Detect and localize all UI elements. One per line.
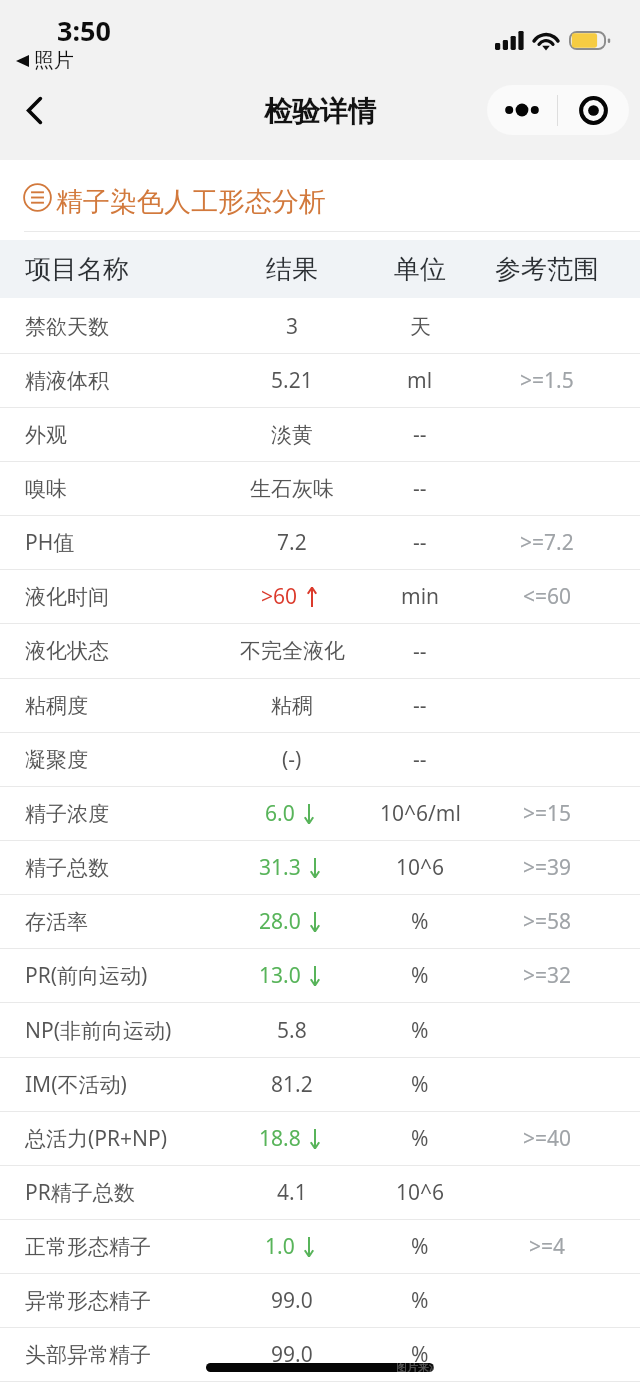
staticText: 10^6 — [396, 853, 445, 882]
button[interactable]: 液化状态 — [0, 624, 640, 679]
button[interactable]: 精子总数 — [0, 841, 640, 895]
staticText: -- — [413, 691, 427, 720]
staticText: 18.8 — [259, 1124, 301, 1153]
staticText: 淡黄 — [271, 422, 313, 448]
button[interactable]: Back — [3, 80, 65, 140]
staticText: >=4 — [529, 1232, 566, 1261]
staticText: 禁欲天数 — [25, 314, 109, 340]
button[interactable]: 精子染色人工形态分析 — [23, 162, 640, 242]
staticText: % — [411, 907, 429, 936]
staticText: >=1.5 — [520, 366, 574, 395]
staticText: 项目名称 — [25, 253, 129, 286]
staticText: % — [411, 961, 429, 990]
staticText: -- — [413, 474, 427, 503]
staticText: PR精子总数 — [25, 1178, 135, 1207]
staticText: 10^6/ml — [380, 799, 461, 828]
staticText: 粘稠度 — [25, 693, 88, 719]
staticText: min — [401, 582, 440, 611]
button[interactable]: PH值 — [0, 516, 640, 570]
staticText: 精液体积 — [25, 368, 109, 394]
staticText: 81.2 — [271, 1070, 313, 1099]
staticText: >=15 — [523, 799, 572, 828]
staticText: 液化状态 — [25, 638, 109, 664]
button[interactable]: PR精子总数 — [0, 1166, 640, 1220]
staticText: >=32 — [523, 961, 572, 990]
staticText: 检验详情 — [264, 94, 376, 129]
staticText: 3:50 — [57, 12, 111, 49]
staticText: 总活力(PR+NP) — [25, 1124, 168, 1153]
button[interactable]: 粘稠度 — [0, 679, 640, 733]
staticText: -- — [413, 528, 427, 557]
staticText: 99.0 — [271, 1340, 313, 1369]
staticText: % — [411, 1070, 429, 1099]
staticText: 精子染色人工形态分析 — [56, 185, 326, 219]
staticText: % — [411, 1340, 429, 1369]
button[interactable]: Close mini program — [558, 85, 629, 135]
staticText: 13.0 — [259, 961, 301, 990]
staticText: % — [411, 1286, 429, 1315]
staticText: PH值 — [25, 528, 75, 557]
staticText: <=60 — [523, 582, 572, 611]
staticText: 参考范围 — [495, 253, 599, 286]
button[interactable]: 精液体积 — [0, 354, 640, 408]
staticText: IM(不活动) — [25, 1070, 127, 1099]
button[interactable]: Return to 照片 — [16, 48, 74, 73]
button[interactable]: NP(非前向运动) — [0, 1003, 640, 1058]
staticText: 粘稠 — [271, 693, 313, 719]
staticText: >=40 — [523, 1124, 572, 1153]
staticText: >60 — [261, 582, 298, 611]
staticText: 5.8 — [277, 1016, 307, 1045]
staticText: 7.2 — [277, 528, 307, 557]
staticText: 31.3 — [259, 853, 301, 882]
staticText: 存活率 — [25, 909, 88, 935]
button[interactable]: 嗅味 — [0, 462, 640, 516]
staticText: (-) — [282, 745, 302, 774]
staticText: ml — [407, 366, 433, 395]
button[interactable]: 凝聚度 — [0, 733, 640, 787]
button[interactable]: 液化时间 — [0, 570, 640, 624]
staticText: % — [411, 1232, 429, 1261]
button[interactable]: 总活力(PR+NP) — [0, 1112, 640, 1166]
staticText: 5.21 — [271, 366, 313, 395]
staticText: 异常形态精子 — [25, 1288, 151, 1314]
staticText: >=58 — [523, 907, 572, 936]
staticText: 不完全液化 — [240, 638, 345, 664]
staticText: 6.0 — [265, 799, 295, 828]
staticText: 1.0 — [265, 1232, 295, 1261]
staticText: NP(非前向运动) — [25, 1016, 172, 1045]
staticText: 生石灰味 — [250, 476, 334, 502]
staticText: PR(前向运动) — [25, 961, 148, 990]
staticText: 嗅味 — [25, 476, 67, 502]
staticText: 头部异常精子 — [25, 1342, 151, 1368]
staticText: 99.0 — [271, 1286, 313, 1315]
staticText: 正常形态精子 — [25, 1234, 151, 1260]
button[interactable]: PR(前向运动) — [0, 949, 640, 1003]
staticText: 28.0 — [259, 907, 301, 936]
staticText: 10^6 — [396, 1178, 445, 1207]
staticText: 3 — [286, 312, 299, 341]
staticText: 4.1 — [277, 1178, 307, 1207]
staticText: 精子浓度 — [25, 801, 109, 827]
button[interactable]: 存活率 — [0, 895, 640, 949]
staticText: % — [411, 1016, 429, 1045]
button[interactable]: 精子浓度 — [0, 787, 640, 841]
button[interactable]: More options — [487, 85, 557, 135]
staticText: -- — [413, 745, 427, 774]
button[interactable]: 禁欲天数 — [0, 300, 640, 354]
staticText: 结果 — [266, 253, 318, 286]
button[interactable]: 头部异常精子 — [0, 1328, 640, 1382]
staticText: 图片来源网络 — [396, 1360, 462, 1374]
staticText: -- — [413, 420, 427, 449]
staticText: 单位 — [394, 253, 446, 286]
staticText: 精子总数 — [25, 855, 109, 881]
button[interactable]: 正常形态精子 — [0, 1220, 640, 1274]
button[interactable]: 外观 — [0, 408, 640, 462]
staticText: -- — [413, 637, 427, 666]
staticText: 外观 — [25, 422, 67, 448]
staticText: % — [411, 1124, 429, 1153]
button[interactable]: IM(不活动) — [0, 1058, 640, 1112]
staticText: >=7.2 — [520, 528, 574, 557]
staticText: 天 — [410, 314, 431, 340]
staticText: >=39 — [523, 853, 572, 882]
button[interactable]: 异常形态精子 — [0, 1274, 640, 1328]
